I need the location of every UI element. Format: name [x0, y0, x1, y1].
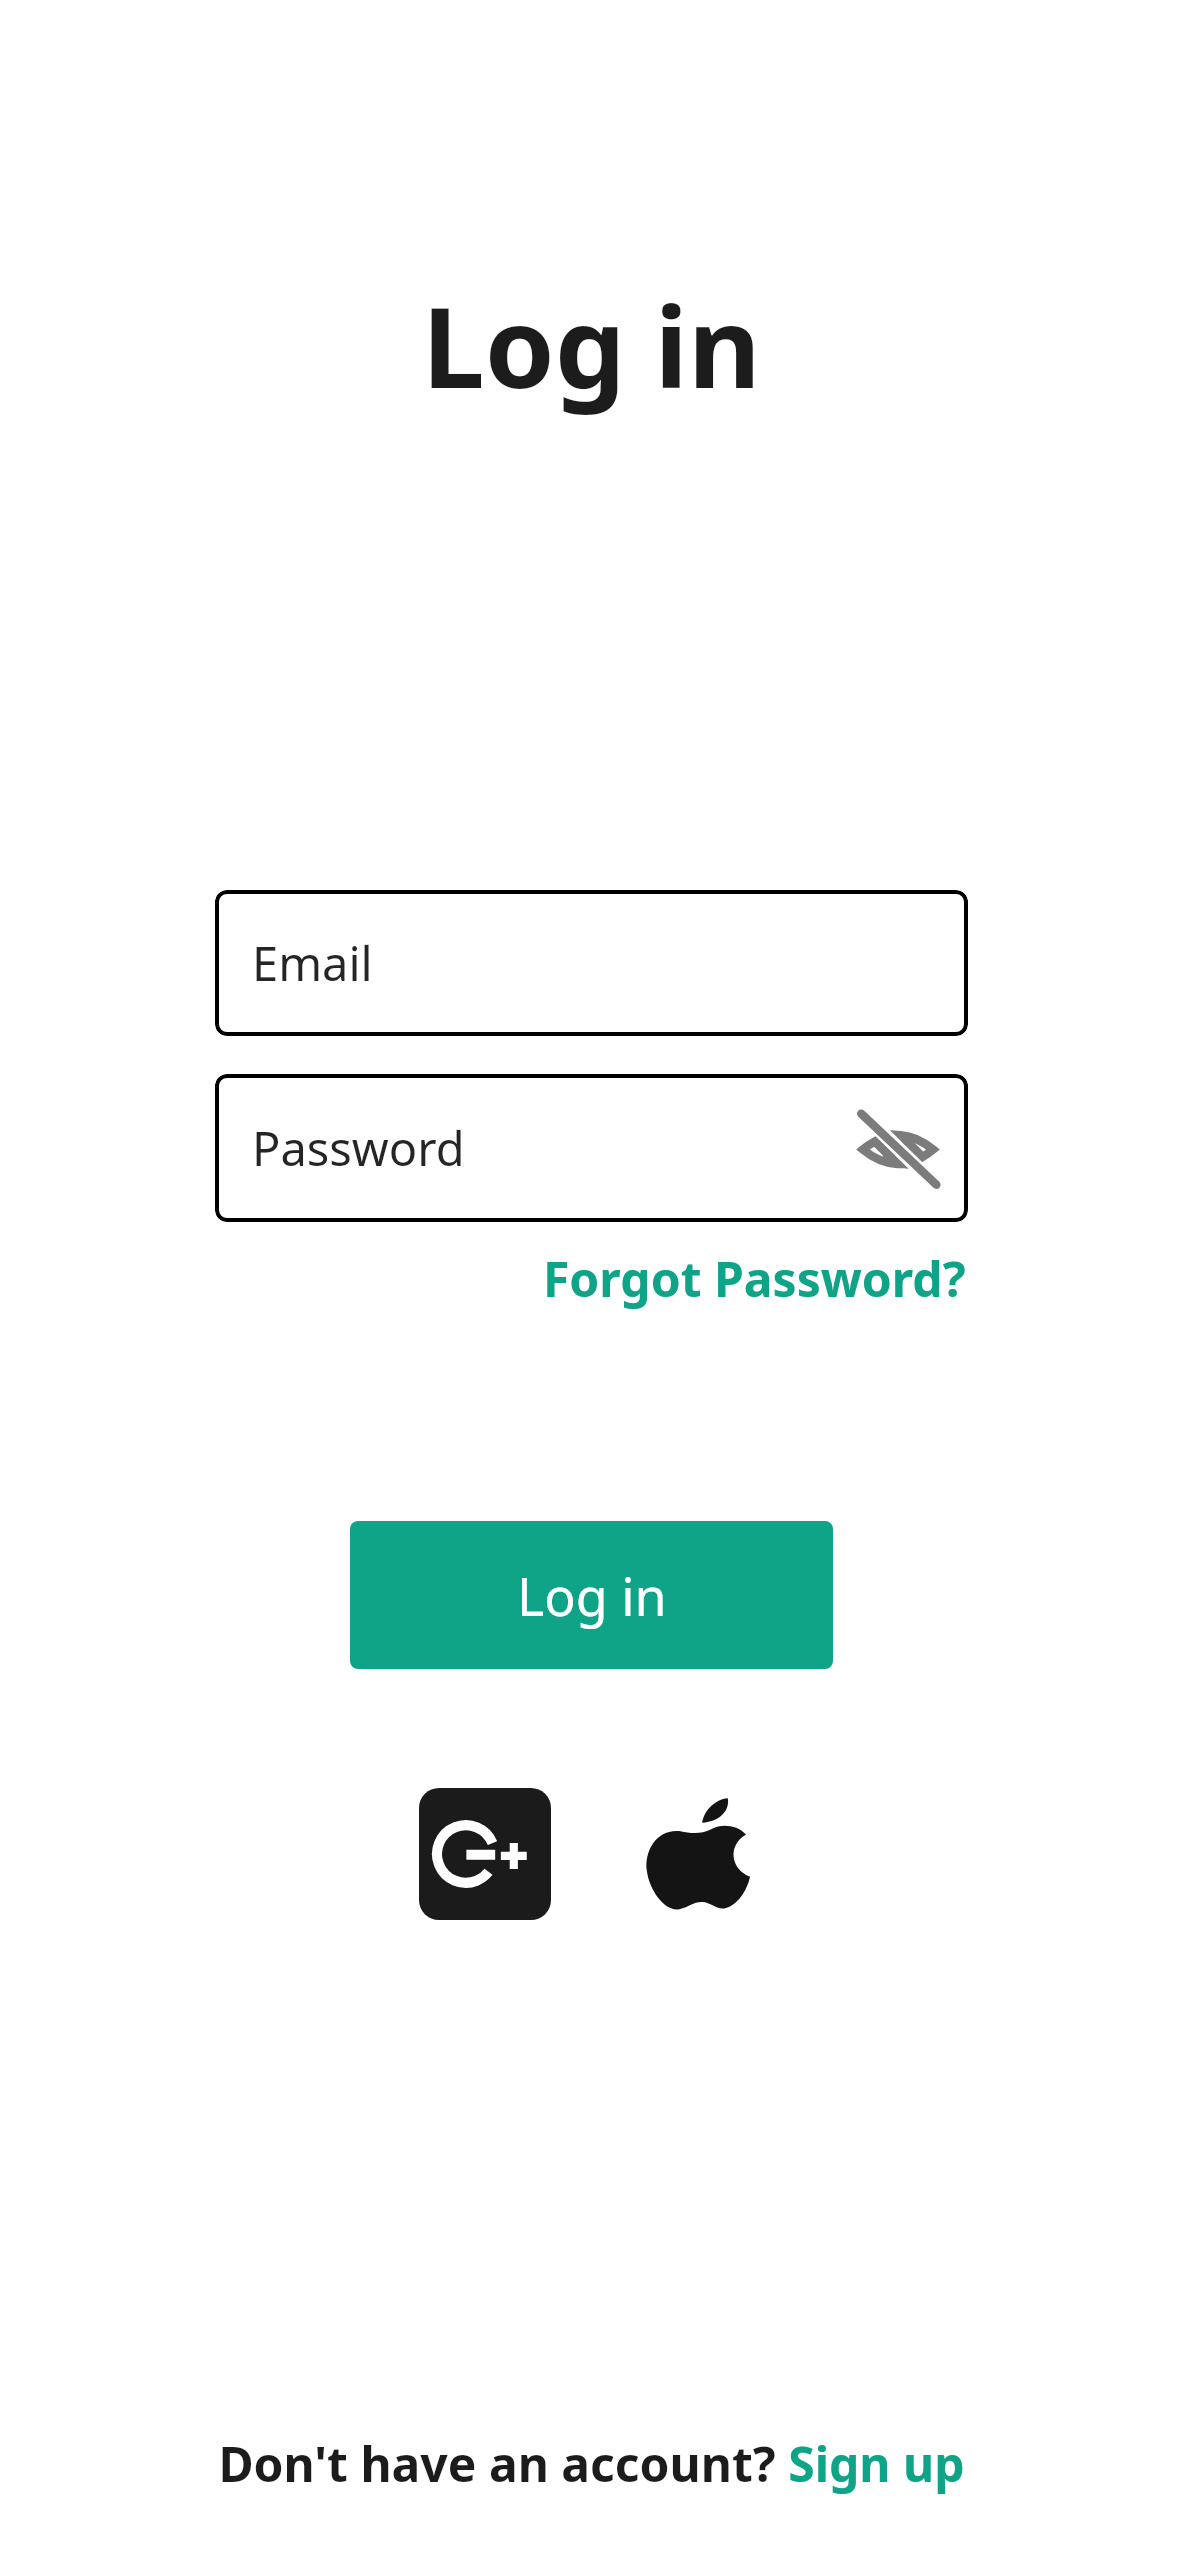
staticText: Don't have an account? Sign up	[218, 2431, 965, 2496]
button[interactable]: Show password	[850, 1100, 946, 1196]
button[interactable]: Email	[215, 890, 968, 1036]
button[interactable]: Password	[215, 1074, 968, 1222]
button[interactable]: Sign in with Google	[419, 1788, 551, 1920]
button[interactable]: Forgot Password?	[541, 1240, 968, 1317]
button[interactable]: Sign in with Apple	[631, 1788, 763, 1920]
button[interactable]: Don't have an account? Sign up	[210, 2425, 973, 2502]
staticText: Forgot Password?	[543, 1246, 966, 1311]
staticText: Log in	[517, 1560, 667, 1631]
staticText: Password	[252, 1116, 465, 1180]
button[interactable]: Log in	[350, 1521, 833, 1669]
staticText: Log in	[422, 268, 761, 421]
staticText: Email	[252, 931, 373, 995]
